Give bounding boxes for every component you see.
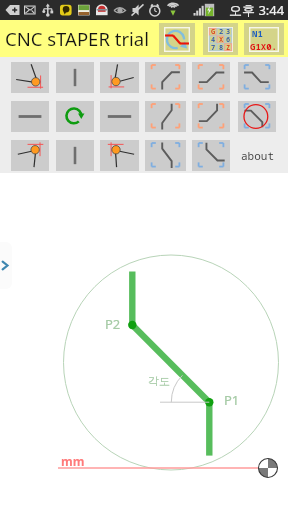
button[interactable]: Numeric keypad: [203, 23, 238, 55]
button[interactable]: Shape 5: [238, 62, 276, 93]
button[interactable]: Shape 16: [192, 140, 230, 171]
button[interactable]: Arc tool: [159, 23, 195, 55]
staticText: Z: [226, 43, 231, 51]
button[interactable]: Shape 3: [145, 62, 186, 93]
button[interactable]: G code list: [244, 23, 284, 55]
staticText: 각도: [148, 374, 170, 388]
button[interactable]: Vertical line 2: [56, 140, 94, 171]
staticText: N1: [252, 27, 263, 39]
button[interactable]: Shape 11: [238, 101, 276, 132]
staticText: G1X0.: [250, 40, 278, 52]
staticText: P2: [105, 315, 121, 333]
button[interactable]: Horizontal line 2: [100, 101, 139, 132]
staticText: 8: [219, 43, 224, 51]
staticText: 2: [219, 27, 224, 35]
button[interactable]: Angle down-right: [11, 140, 49, 171]
button[interactable]: Angle down-left: [100, 140, 139, 171]
staticText: 6: [226, 35, 231, 43]
button[interactable]: Shape 4: [192, 62, 230, 93]
button[interactable]: Angle up-right: [11, 62, 49, 93]
staticText: about: [241, 148, 274, 163]
staticText: G: [211, 27, 216, 35]
button[interactable]: Open side panel: [0, 242, 12, 289]
button[interactable]: Shape 15: [145, 140, 186, 171]
staticText: X: [219, 35, 224, 43]
button[interactable]: Horizontal line: [11, 101, 49, 132]
button[interactable]: Shape 9: [145, 101, 186, 132]
button[interactable]: Vertical line: [56, 62, 94, 93]
staticText: 3: [226, 27, 231, 35]
staticText: mm: [61, 453, 85, 469]
staticText: 7: [211, 43, 216, 51]
staticText: CNC sTAPER trial: [5, 26, 149, 51]
staticText: P1: [224, 391, 240, 409]
button[interactable]: Rotate: [56, 101, 94, 132]
staticText: 4: [211, 35, 216, 43]
button[interactable]: about: [238, 140, 276, 171]
button[interactable]: Angle up-left: [100, 62, 139, 93]
staticText: 오후 3:44: [229, 1, 285, 19]
button[interactable]: Shape 10: [192, 101, 230, 132]
